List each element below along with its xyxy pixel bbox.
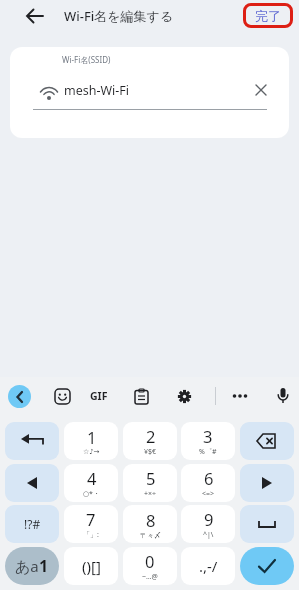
staticText: 2 — [146, 425, 156, 447]
staticText: 8 — [146, 509, 156, 531]
button[interactable] — [240, 422, 294, 460]
staticText: mesh-Wi-Fi — [64, 82, 130, 99]
button[interactable]: 5 — [123, 464, 177, 502]
staticText: 3 — [203, 425, 213, 447]
button[interactable] — [5, 422, 59, 460]
staticText: %゜# — [199, 447, 217, 457]
button[interactable]: 8 — [123, 505, 177, 543]
staticText: あa — [15, 556, 39, 576]
staticText: Wi-Fi名を編集する — [64, 7, 174, 25]
button[interactable] — [272, 385, 294, 407]
button[interactable]: GIF — [86, 386, 112, 406]
staticText: ¥$€ — [144, 447, 157, 457]
staticText: !?# — [24, 516, 41, 532]
button[interactable]: 3 — [181, 422, 235, 460]
staticText: 7 — [86, 508, 96, 530]
staticText: ^|\ — [203, 530, 214, 540]
button[interactable]: 9 — [181, 505, 235, 543]
button[interactable] — [5, 464, 59, 502]
staticText: 1 — [87, 426, 97, 448]
button[interactable]: .,-/ — [181, 547, 235, 585]
button[interactable]: 7 — [64, 505, 118, 543]
button[interactable] — [20, 2, 50, 30]
button[interactable] — [8, 385, 31, 408]
button[interactable]: 0 — [123, 547, 177, 585]
staticText: 6 — [204, 467, 214, 489]
staticText: 1 — [39, 555, 49, 577]
button[interactable] — [52, 386, 72, 406]
button[interactable]: ()[] — [64, 547, 118, 585]
button[interactable] — [240, 547, 294, 585]
button[interactable] — [228, 386, 252, 406]
staticText: ~…@ — [142, 572, 158, 582]
staticText: 4 — [87, 467, 97, 489]
button[interactable] — [174, 386, 194, 406]
staticText: ()[] — [82, 556, 101, 576]
button[interactable]: 6 — [181, 464, 235, 502]
button[interactable]: あa — [5, 547, 59, 585]
button[interactable]: !?# — [5, 505, 59, 543]
staticText: 「」: — [83, 530, 99, 540]
button[interactable] — [250, 79, 272, 101]
staticText: 〒々〆 — [140, 531, 161, 540]
button[interactable]: 1 — [64, 422, 118, 460]
button[interactable] — [240, 464, 294, 502]
staticText: GIF — [90, 389, 108, 403]
staticText: Wi-Fi名(SSID) — [62, 54, 111, 65]
staticText: 5 — [146, 467, 156, 489]
button[interactable]: 2 — [123, 422, 177, 460]
button[interactable] — [240, 505, 294, 543]
staticText: 完了 — [255, 8, 281, 24]
staticText: 9 — [204, 508, 214, 530]
staticText: ○*・ — [83, 489, 100, 499]
staticText: 0 — [145, 550, 155, 572]
button[interactable]: 4 — [64, 464, 118, 502]
staticText: .,-/ — [199, 556, 218, 576]
staticText: <=> — [202, 489, 215, 499]
button[interactable]: 完了 — [243, 3, 293, 28]
staticText: +×÷ — [144, 489, 157, 499]
staticText: ☆♪→ — [83, 448, 100, 456]
button[interactable] — [131, 386, 151, 406]
